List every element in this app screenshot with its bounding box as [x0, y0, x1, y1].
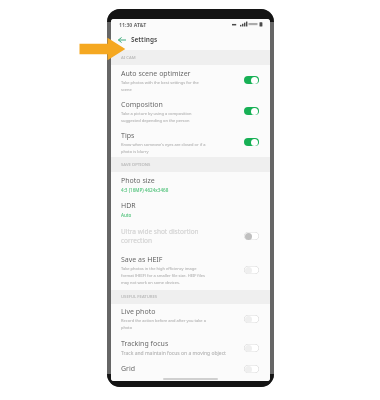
- staticText: Live photo: [121, 307, 156, 317]
- button[interactable]: HDR: [111, 197, 270, 221]
- button[interactable]: On: [244, 107, 259, 115]
- staticText: Track and maintain focus on a moving obj…: [121, 350, 226, 357]
- button[interactable]: Off: [244, 266, 259, 274]
- button[interactable]: Auto scene optimizer: [111, 65, 270, 95]
- staticText: SAVE OPTIONS: [121, 162, 151, 168]
- staticText: Ultra wide shot distortion correction: [121, 227, 199, 245]
- button[interactable]: Off: [244, 315, 259, 323]
- button[interactable]: Live photo: [111, 304, 270, 333]
- staticText: Auto: [121, 212, 132, 218]
- button[interactable]: On: [244, 138, 259, 146]
- staticText: Photo size: [121, 176, 155, 186]
- staticText: Auto scene optimizer: [121, 69, 191, 79]
- button[interactable]: Tracking focus: [111, 333, 270, 362]
- button[interactable]: Off: [244, 365, 259, 373]
- staticText: Grid: [121, 364, 136, 374]
- staticText: Take photos in the high efficiency image…: [121, 266, 205, 285]
- staticText: Take photos with the best settings for t…: [121, 80, 199, 92]
- button[interactable]: On: [244, 76, 259, 84]
- staticText: Save as HEIF: [121, 255, 163, 265]
- staticText: Composition: [121, 100, 163, 110]
- button[interactable]: Composition: [111, 95, 270, 127]
- staticText: Tips: [121, 131, 135, 141]
- button[interactable]: Ultra wide shot distortion correction: [111, 221, 270, 250]
- button[interactable]: Grid: [111, 362, 270, 376]
- staticText: 4:3 (16MP) 4624x3468: [121, 187, 169, 193]
- button[interactable]: Save as HEIF: [111, 250, 270, 290]
- staticText: 11:30 AT&T: [119, 21, 147, 28]
- button[interactable]: Back: [115, 33, 128, 46]
- button[interactable]: Tips: [111, 127, 270, 157]
- button[interactable]: Photo size: [111, 172, 270, 197]
- staticText: Settings: [131, 35, 158, 44]
- button[interactable]: Off: [244, 344, 259, 352]
- staticText: Know when someone's eyes are closed or i…: [121, 142, 206, 154]
- staticText: HDR: [121, 201, 136, 211]
- staticText: Record the action before and after you t…: [121, 318, 206, 330]
- staticText: USEFUL FEATURES: [121, 294, 158, 300]
- button[interactable]: Off: [244, 232, 259, 240]
- staticText: AI CAM: [121, 55, 136, 61]
- staticText: Take a picture by using a composition su…: [121, 111, 192, 123]
- staticText: Tracking focus: [121, 339, 169, 349]
